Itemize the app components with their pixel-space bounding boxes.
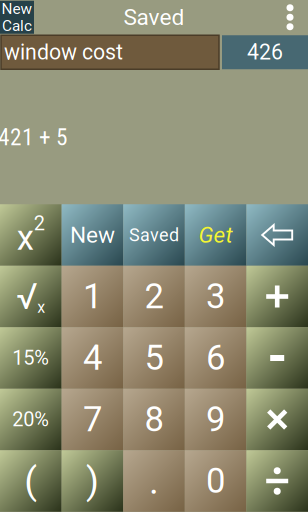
button[interactable]: New — [62, 204, 123, 266]
staticText: 4 — [83, 338, 102, 378]
button[interactable]: Backspace — [246, 204, 308, 266]
button[interactable]: window cost — [1, 35, 219, 69]
button[interactable]: 4 — [62, 327, 123, 389]
staticText: 426 — [247, 40, 283, 65]
staticText: 20% — [12, 408, 49, 431]
staticText: 0 — [206, 461, 225, 501]
button[interactable]: 6 — [185, 327, 246, 389]
button[interactable]: 1 — [62, 266, 123, 327]
staticText: ) — [86, 459, 99, 503]
staticText: 2 — [144, 276, 163, 317]
staticText: New — [70, 222, 115, 248]
staticText: window cost — [4, 40, 123, 65]
button[interactable]: 2 — [123, 266, 185, 327]
button[interactable]: ( — [0, 450, 62, 512]
button[interactable]: square root — [0, 266, 62, 327]
button[interactable]: 0 — [185, 450, 246, 512]
staticText: 5 — [144, 338, 163, 378]
staticText: . — [149, 459, 159, 503]
staticText: √ — [16, 275, 37, 318]
button[interactable]: More options — [272, 0, 308, 34]
staticText: 2 — [34, 212, 45, 235]
button[interactable]: Plus — [246, 266, 308, 327]
button[interactable]: 7 — [62, 389, 123, 450]
button[interactable]: . — [123, 450, 185, 512]
button[interactable]: 9 — [185, 389, 246, 450]
staticText: Saved — [123, 4, 184, 31]
staticText: 7 — [83, 399, 102, 440]
button[interactable]: 426 — [222, 35, 308, 69]
staticText: Get — [199, 222, 233, 248]
button[interactable]: 5 — [123, 327, 185, 389]
button[interactable]: 20% — [0, 389, 62, 450]
staticText: 15% — [12, 346, 49, 370]
staticText: 421 + 5 — [0, 124, 68, 151]
staticText: 6 — [206, 338, 225, 378]
staticText: 8 — [144, 399, 163, 440]
staticText: Calc — [2, 17, 32, 35]
button[interactable]: Minus — [246, 327, 308, 389]
button[interactable]: New — [0, 1, 34, 34]
staticText: ( — [24, 459, 37, 503]
button[interactable]: Get — [185, 204, 246, 266]
button[interactable]: Saved — [123, 204, 185, 266]
button[interactable]: 3 — [185, 266, 246, 327]
staticText: 3 — [206, 276, 225, 317]
staticText: New — [1, 0, 32, 18]
staticText: 1 — [83, 276, 102, 317]
staticText: x — [37, 298, 45, 317]
button[interactable]: ) — [62, 450, 123, 512]
button[interactable]: Divide — [246, 450, 308, 512]
button[interactable]: Multiply — [246, 389, 308, 450]
button[interactable]: x squared — [0, 204, 62, 266]
button[interactable]: 8 — [123, 389, 185, 450]
staticText: x — [17, 218, 34, 258]
staticText: 9 — [206, 399, 225, 440]
staticText: Saved — [129, 224, 179, 246]
button[interactable]: 15% — [0, 327, 62, 389]
